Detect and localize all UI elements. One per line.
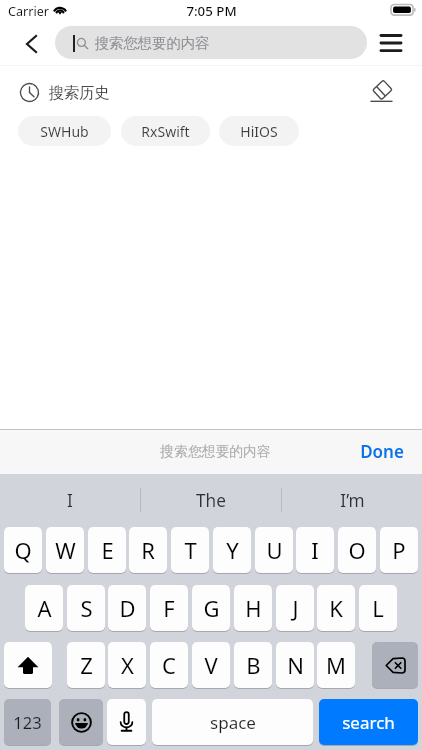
staticText: F bbox=[163, 593, 175, 623]
staticText: M bbox=[326, 650, 346, 680]
staticText: N bbox=[287, 650, 304, 680]
button[interactable]: L bbox=[359, 585, 397, 631]
staticText: W bbox=[55, 535, 76, 565]
staticText: X bbox=[121, 650, 134, 680]
button[interactable]: B bbox=[234, 642, 272, 688]
button[interactable]: Dictation bbox=[107, 699, 146, 745]
staticText: HiIOS bbox=[240, 122, 278, 141]
staticText: I’m bbox=[340, 489, 365, 512]
staticText: The bbox=[196, 489, 226, 512]
button[interactable]: S bbox=[67, 585, 105, 631]
button[interactable]: Backspace bbox=[372, 642, 418, 688]
staticText: R bbox=[141, 535, 155, 565]
button[interactable]: M bbox=[317, 642, 355, 688]
staticText: 123 bbox=[13, 711, 42, 733]
button[interactable]: R bbox=[129, 527, 167, 573]
staticText: G bbox=[203, 593, 220, 623]
staticText: K bbox=[329, 593, 343, 623]
button[interactable]: E bbox=[88, 527, 126, 573]
staticText: space bbox=[210, 711, 256, 734]
button[interactable]: Clear history bbox=[366, 76, 396, 106]
staticText: search bbox=[342, 711, 395, 734]
button[interactable]: I bbox=[0, 476, 140, 524]
button[interactable]: RxSwift bbox=[121, 116, 210, 146]
staticText: O bbox=[348, 535, 366, 565]
button[interactable]: Done bbox=[360, 440, 404, 463]
button[interactable]: SWHub bbox=[18, 116, 111, 146]
button[interactable]: C bbox=[150, 642, 188, 688]
button[interactable]: D bbox=[108, 585, 146, 631]
staticText: U bbox=[266, 535, 283, 565]
button[interactable]: I’m bbox=[282, 476, 422, 524]
staticText: Q bbox=[14, 535, 32, 565]
staticText: D bbox=[119, 593, 136, 623]
staticText: 搜索历史 bbox=[48, 83, 110, 102]
button[interactable]: The bbox=[141, 476, 281, 524]
staticText: A bbox=[37, 593, 52, 623]
button[interactable]: space bbox=[152, 699, 313, 745]
staticText: C bbox=[162, 650, 176, 680]
staticText: I bbox=[67, 489, 73, 512]
staticText: J bbox=[292, 593, 299, 623]
button[interactable]: H bbox=[234, 585, 272, 631]
staticText: 搜索您想要的内容 bbox=[94, 34, 210, 52]
staticText: B bbox=[246, 650, 261, 680]
staticText: Done bbox=[360, 440, 404, 463]
button[interactable]: I bbox=[296, 527, 334, 573]
staticText: E bbox=[101, 535, 114, 565]
button[interactable]: Shift bbox=[4, 642, 52, 688]
button[interactable]: Y bbox=[213, 527, 251, 573]
staticText: Y bbox=[226, 535, 239, 565]
staticText: V bbox=[204, 650, 218, 680]
staticText: I bbox=[311, 535, 319, 565]
staticText: L bbox=[372, 593, 384, 623]
button[interactable]: search bbox=[319, 699, 418, 745]
staticText: S bbox=[80, 593, 93, 623]
button[interactable]: T bbox=[171, 527, 209, 573]
button[interactable]: X bbox=[108, 642, 146, 688]
button[interactable]: HiIOS bbox=[219, 116, 299, 146]
button[interactable]: F bbox=[150, 585, 188, 631]
button[interactable]: Z bbox=[67, 642, 105, 688]
button[interactable]: A bbox=[25, 585, 63, 631]
button[interactable]: Back bbox=[13, 26, 47, 59]
button[interactable]: O bbox=[338, 527, 376, 573]
staticText: Carrier bbox=[8, 3, 49, 20]
button[interactable]: K bbox=[317, 585, 355, 631]
button[interactable]: Emoji bbox=[59, 699, 103, 745]
staticText: P bbox=[392, 535, 406, 565]
staticText: Z bbox=[80, 650, 93, 680]
staticText: H bbox=[245, 593, 262, 623]
staticText: SWHub bbox=[40, 122, 89, 141]
button[interactable]: 搜索您想要的内容 bbox=[55, 26, 367, 59]
staticText: 搜索您想要的内容 bbox=[160, 443, 271, 460]
button[interactable]: V bbox=[192, 642, 230, 688]
button[interactable]: W bbox=[46, 527, 84, 573]
button[interactable]: 123 bbox=[4, 699, 51, 745]
button[interactable]: P bbox=[380, 527, 418, 573]
button[interactable]: Q bbox=[4, 527, 42, 573]
button[interactable]: J bbox=[276, 585, 314, 631]
staticText: 7:05 PM bbox=[186, 2, 237, 20]
button[interactable]: Menu bbox=[375, 26, 407, 59]
staticText: T bbox=[184, 535, 197, 565]
button[interactable]: U bbox=[255, 527, 293, 573]
staticText: RxSwift bbox=[141, 122, 190, 141]
button[interactable]: N bbox=[276, 642, 314, 688]
button[interactable]: G bbox=[192, 585, 230, 631]
